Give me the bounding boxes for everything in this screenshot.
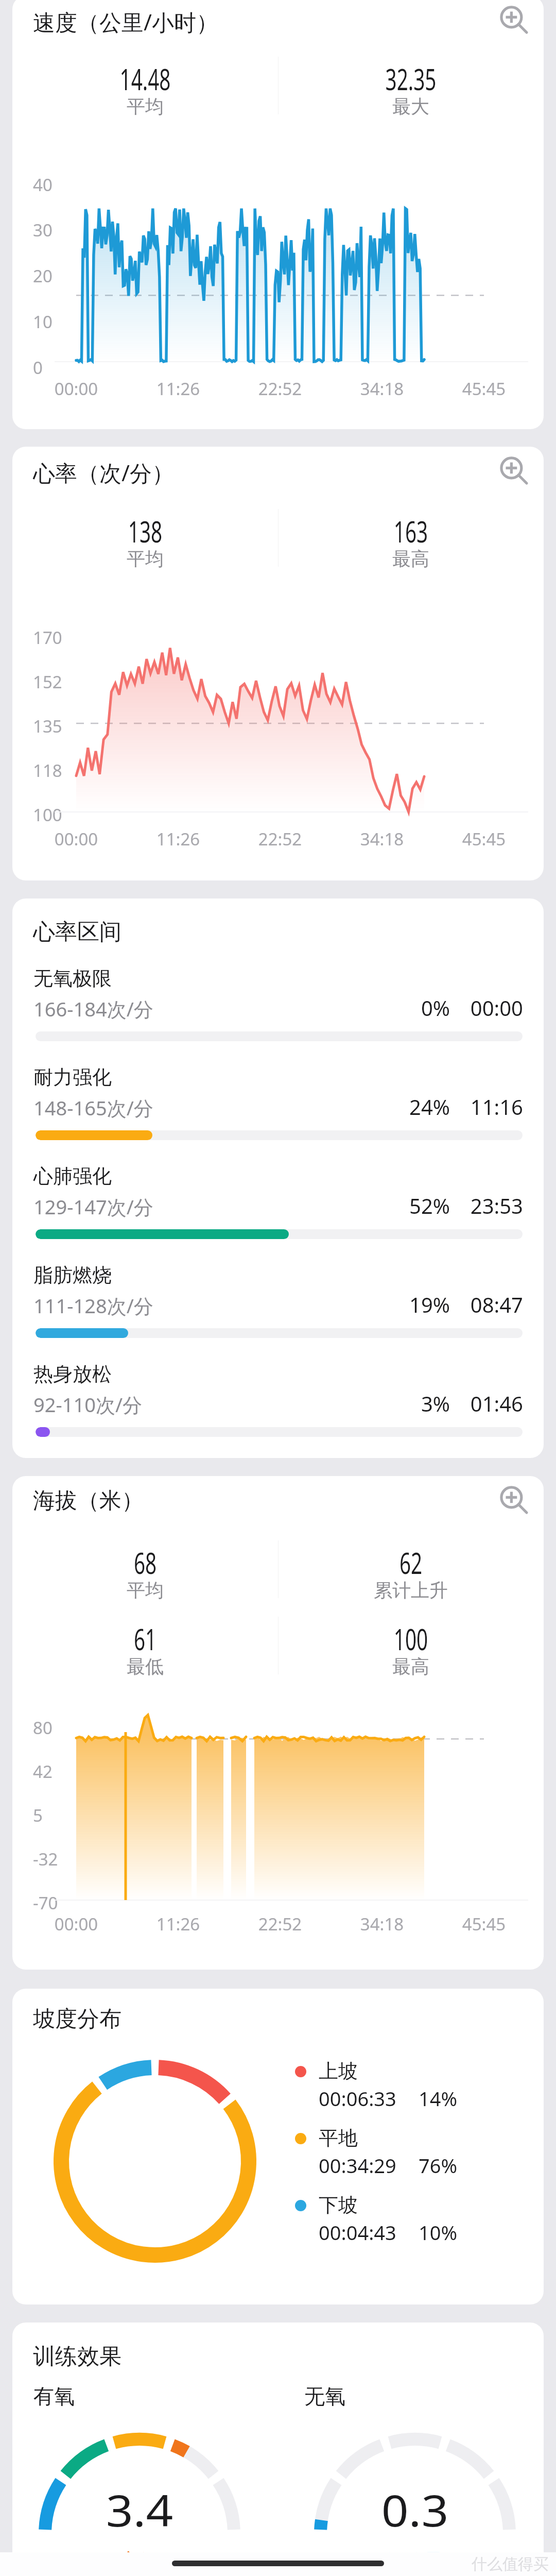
- staticText: 23:53: [12, 1192, 523, 1219]
- staticText: 下坡: [319, 2193, 358, 2217]
- staticText: 3.4: [29, 2480, 251, 2539]
- staticText: 11:16: [12, 1093, 523, 1121]
- staticText: 海拔（米）: [33, 1487, 144, 1515]
- staticText: 152: [33, 670, 62, 693]
- staticText: 135: [33, 715, 62, 738]
- staticText: 脂肪燃烧: [33, 1263, 112, 1287]
- staticText: 163: [319, 512, 502, 551]
- staticText: 170: [33, 626, 62, 649]
- staticText: 10: [33, 310, 53, 333]
- staticText: 40: [33, 173, 53, 196]
- staticText: 心肺强化: [33, 1164, 112, 1189]
- staticText: 良好: [39, 2549, 240, 2572]
- staticText: 无氧: [304, 2383, 345, 2409]
- button[interactable]: 放大图表: [495, 1, 534, 40]
- staticText: 30: [33, 218, 53, 242]
- staticText: 42: [33, 1760, 53, 1783]
- staticText: 平均: [12, 547, 278, 570]
- staticText: 平地: [319, 2126, 358, 2150]
- staticText: 19%: [12, 1291, 450, 1318]
- staticText: 100: [33, 803, 62, 826]
- button[interactable]: 放大图表: [495, 1481, 534, 1520]
- button[interactable]: 热身放松: [12, 1358, 544, 1456]
- staticText: 68: [54, 1543, 237, 1582]
- staticText: 45:45: [443, 377, 525, 400]
- staticText: 热身放松: [33, 1362, 112, 1386]
- staticText: 0: [33, 356, 43, 379]
- staticText: 什么值得买: [472, 2554, 549, 2574]
- staticText: -32: [33, 1848, 58, 1871]
- staticText: 最大: [278, 95, 544, 118]
- staticText: 00:04:43: [319, 2219, 396, 2246]
- staticText: 最高: [278, 1655, 544, 1678]
- staticText: 10%: [419, 2219, 458, 2246]
- staticText: -70: [33, 1891, 58, 1914]
- staticText: 148-165次/分: [33, 1094, 153, 1121]
- staticText: 0%: [12, 994, 450, 1022]
- staticText: 138: [54, 512, 237, 551]
- staticText: 平均: [12, 1579, 278, 1602]
- staticText: 80: [33, 1716, 53, 1739]
- staticText: 0.3: [304, 2480, 526, 2539]
- button[interactable]: 放大图表: [495, 452, 534, 491]
- staticText: 训练效果: [33, 2343, 121, 2370]
- staticText: 62: [319, 1543, 502, 1582]
- button[interactable]: 耐力强化: [12, 1061, 544, 1160]
- button[interactable]: 脂肪燃烧: [12, 1259, 544, 1358]
- staticText: 08:47: [12, 1291, 523, 1318]
- staticText: 耐力强化: [33, 1065, 112, 1090]
- button[interactable]: 心肺强化: [12, 1160, 544, 1259]
- staticText: 20: [33, 264, 53, 287]
- staticText: 118: [33, 759, 62, 782]
- staticText: 129-147次/分: [33, 1193, 153, 1220]
- staticText: 上坡: [319, 2059, 358, 2083]
- staticText: 166-184次/分: [33, 995, 153, 1022]
- staticText: 00:00: [35, 1912, 117, 1936]
- staticText: 14.48: [54, 59, 237, 98]
- staticText: 45:45: [443, 827, 525, 851]
- staticText: 111-128次/分: [33, 1292, 153, 1319]
- staticText: 心率区间: [33, 918, 121, 946]
- staticText: 22:52: [239, 1912, 321, 1936]
- staticText: 有氧: [33, 2383, 75, 2409]
- staticText: 32.35: [319, 59, 502, 98]
- staticText: 76%: [419, 2152, 458, 2179]
- staticText: 最低: [12, 1655, 278, 1678]
- staticText: 92-110次/分: [33, 1391, 143, 1418]
- staticText: 速度（公里/小时）: [33, 7, 218, 37]
- staticText: 累计上升: [278, 1579, 544, 1602]
- staticText: 22:52: [239, 827, 321, 851]
- staticText: 坡度分布: [33, 2005, 121, 2033]
- staticText: 00:00: [12, 994, 523, 1022]
- staticText: 22:52: [239, 377, 321, 400]
- staticText: 3%: [12, 1389, 450, 1417]
- staticText: 34:18: [341, 377, 423, 400]
- staticText: 无氧极限: [33, 966, 112, 991]
- staticText: 无效果: [314, 2549, 516, 2572]
- staticText: 11:26: [137, 377, 219, 400]
- staticText: 45:45: [443, 1912, 525, 1936]
- staticText: 14%: [419, 2085, 458, 2112]
- staticText: 00:00: [35, 827, 117, 851]
- staticText: 5: [33, 1804, 43, 1827]
- staticText: 01:46: [12, 1389, 523, 1417]
- staticText: 心率（次/分）: [33, 457, 174, 488]
- staticText: 11:26: [137, 827, 219, 851]
- staticText: 00:34:29: [319, 2152, 396, 2179]
- staticText: 11:26: [137, 1912, 219, 1936]
- button[interactable]: 无氧极限: [12, 962, 544, 1061]
- staticText: 61: [54, 1619, 237, 1658]
- staticText: 100: [319, 1619, 502, 1658]
- staticText: 24%: [12, 1093, 450, 1121]
- staticText: 平均: [12, 95, 278, 118]
- staticText: 00:00: [35, 377, 117, 400]
- staticText: 00:06:33: [319, 2085, 396, 2112]
- staticText: 52%: [12, 1192, 450, 1219]
- staticText: 34:18: [341, 827, 423, 851]
- staticText: 34:18: [341, 1912, 423, 1936]
- staticText: 最高: [278, 547, 544, 570]
